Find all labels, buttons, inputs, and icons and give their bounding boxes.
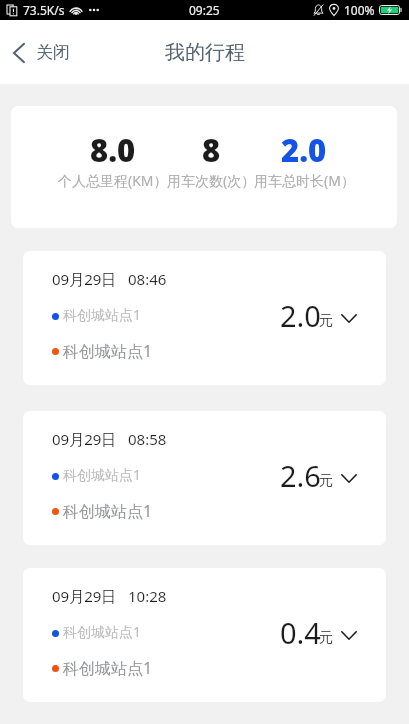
button[interactable]: 09月29日 [23, 251, 386, 385]
staticText: 08:58 [128, 429, 167, 449]
button[interactable]: 09月29日 [23, 411, 386, 545]
button[interactable]: Expand [338, 626, 360, 644]
staticText: 2.6 [280, 456, 321, 495]
staticText: 8.0 [90, 129, 136, 171]
staticText: 用车次数(次） [167, 171, 256, 190]
staticText: 08:46 [128, 269, 167, 289]
staticText: 2.0 [281, 129, 327, 171]
staticText: 科创城站点1 [63, 500, 153, 522]
button[interactable]: 09月29日 [23, 568, 386, 702]
staticText: 09月29日 [52, 586, 117, 606]
staticText: 科创城站点1 [63, 305, 142, 324]
staticText: 科创城站点1 [63, 465, 142, 484]
staticText: 元 [319, 629, 333, 647]
staticText: 09:25 [189, 2, 220, 18]
staticText: 09月29日 [52, 269, 117, 289]
staticText: 科创城站点1 [63, 657, 153, 679]
button[interactable]: Expand [338, 469, 360, 487]
staticText: 09月29日 [52, 429, 117, 449]
staticText: 科创城站点1 [63, 340, 153, 362]
staticText: 用车总时长(M） [254, 171, 355, 190]
staticText: 73.5K/s [23, 2, 65, 18]
staticText: 关闭 [36, 42, 70, 63]
staticText: 0.4 [280, 613, 321, 652]
staticText: 我的行程 [165, 40, 245, 65]
button[interactable]: Expand [338, 309, 360, 327]
staticText: 科创城站点1 [63, 622, 142, 641]
button[interactable]: 关闭 Close [0, 36, 84, 69]
staticText: 100% [344, 2, 375, 18]
staticText: 10:28 [128, 586, 167, 606]
staticText: 元 [319, 472, 333, 490]
staticText: 个人总里程(KM） [58, 171, 168, 190]
staticText: 2.0 [280, 296, 321, 335]
staticText: 元 [319, 312, 333, 330]
staticText: 8 [202, 129, 221, 171]
